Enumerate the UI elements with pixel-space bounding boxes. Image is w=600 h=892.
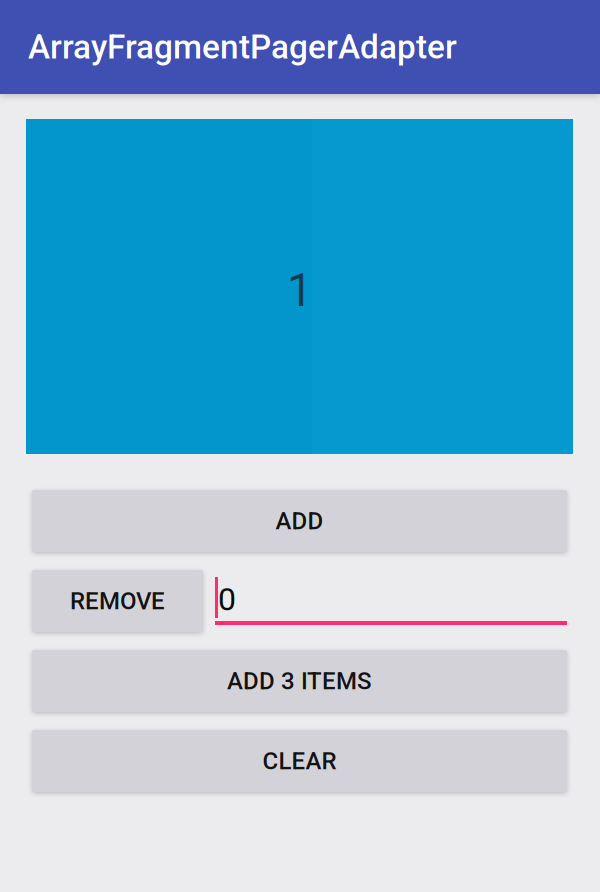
staticText: 1 [287, 264, 312, 317]
staticText: REMOVE [70, 587, 165, 615]
staticText: ADD 3 ITEMS [227, 667, 372, 695]
staticText: ADD [275, 507, 323, 535]
staticText: ArrayFragmentPagerAdapter [28, 27, 457, 67]
button[interactable]: Item index [215, 570, 567, 632]
button[interactable]: REMOVE [32, 570, 203, 632]
staticText: CLEAR [262, 747, 336, 775]
button[interactable]: ADD 3 ITEMS [32, 650, 567, 712]
button[interactable]: ADD [32, 490, 567, 552]
button[interactable]: CLEAR [32, 730, 567, 792]
staticText: 0 [218, 580, 236, 618]
